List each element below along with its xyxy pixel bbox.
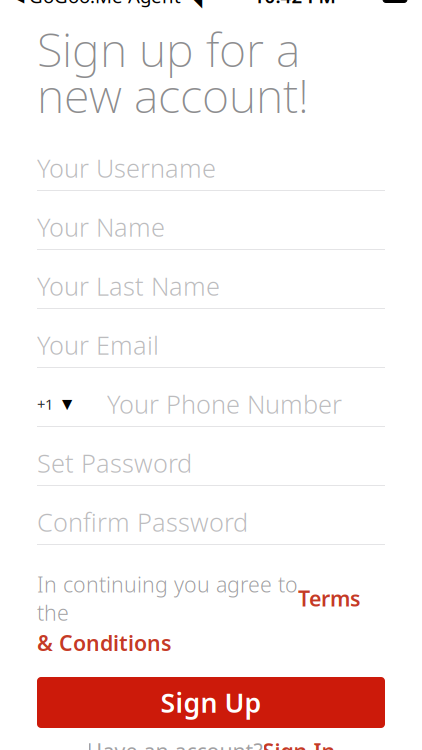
staticText: GoGoo.Me Agent bbox=[24, 0, 181, 8]
button[interactable]: Terms bbox=[298, 584, 361, 612]
button[interactable]: Your Last Name bbox=[0, 257, 422, 316]
button[interactable]: Your Username bbox=[0, 139, 422, 198]
button[interactable]: Set Password bbox=[0, 434, 422, 493]
staticText: Set Password bbox=[37, 446, 192, 480]
button[interactable]: & Conditions bbox=[37, 629, 385, 657]
staticText: ▼ bbox=[62, 396, 72, 411]
staticText: Terms bbox=[298, 584, 361, 612]
button[interactable]: Sign Up bbox=[37, 677, 385, 728]
staticText: +1 bbox=[37, 394, 53, 414]
staticText: Your Email bbox=[37, 328, 159, 362]
button[interactable]: Confirm Password bbox=[0, 493, 422, 552]
staticText: Your Name bbox=[37, 210, 165, 244]
staticText: Sign up for a bbox=[37, 18, 300, 80]
button[interactable]: Select country code bbox=[37, 382, 107, 426]
staticText: Confirm Password bbox=[37, 505, 248, 539]
staticText: ◤◥ bbox=[193, 0, 202, 10]
staticText: ◀ bbox=[12, 0, 24, 5]
staticText: Sign In bbox=[262, 737, 335, 750]
button[interactable]: Your Phone Number bbox=[107, 382, 385, 426]
staticText: Your Username bbox=[37, 151, 216, 185]
staticText: & Conditions bbox=[37, 629, 172, 657]
staticText: Sign Up bbox=[160, 685, 261, 720]
button[interactable]: Your Name bbox=[0, 198, 422, 257]
staticText: In continuing you agree to the bbox=[37, 570, 298, 627]
staticText: 10:42 PM bbox=[253, 0, 335, 8]
staticText: Have an account? bbox=[86, 737, 262, 750]
staticText: Your Phone Number bbox=[107, 387, 342, 421]
staticText: Your Last Name bbox=[37, 269, 220, 303]
staticText: new account! bbox=[37, 64, 309, 126]
button[interactable]: Your Email bbox=[0, 316, 422, 375]
button[interactable]: Have an account? bbox=[0, 736, 422, 750]
